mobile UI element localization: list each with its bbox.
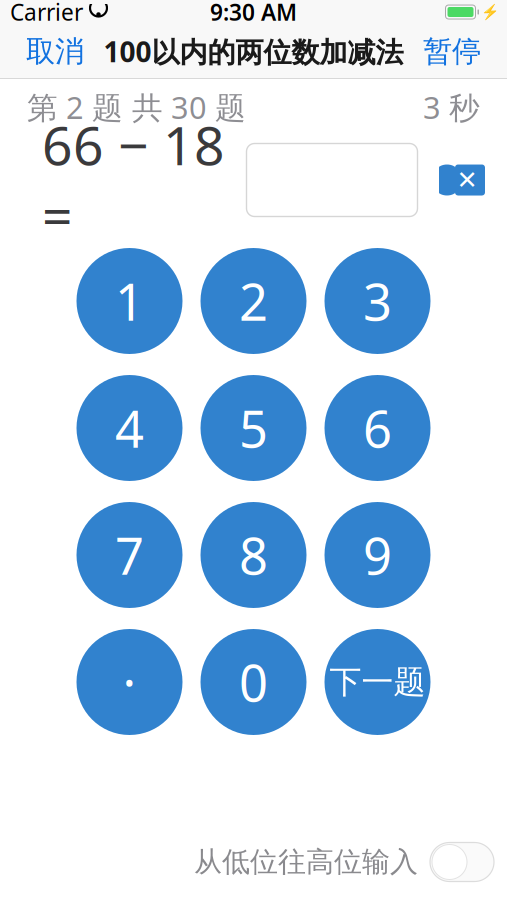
- staticText: 8: [239, 521, 268, 589]
- button[interactable]: 取消: [14, 24, 96, 78]
- staticText: Carrier: [10, 0, 83, 27]
- staticText: 从低位往高位输入: [194, 845, 418, 879]
- button[interactable]: ·: [76, 629, 182, 735]
- button[interactable]: 9: [324, 502, 430, 608]
- staticText: ⚡: [481, 4, 499, 20]
- button[interactable]: 3: [324, 248, 430, 354]
- staticText: 2: [239, 267, 268, 335]
- staticText: 暂停: [423, 33, 481, 69]
- button[interactable]: 7: [76, 502, 182, 608]
- button[interactable]: 1: [76, 248, 182, 354]
- staticText: 1: [115, 267, 144, 335]
- staticText: 4: [115, 394, 144, 462]
- staticText: 100以内的两位数加减法: [103, 33, 403, 70]
- staticText: 6: [363, 394, 392, 462]
- staticText: 7: [115, 521, 144, 589]
- staticText: 9:30 AM: [210, 0, 297, 27]
- button[interactable]: 答案输入框: [246, 143, 417, 216]
- button[interactable]: 暂停: [411, 24, 493, 78]
- button[interactable]: 2: [200, 248, 306, 354]
- button[interactable]: 5: [200, 375, 306, 481]
- button[interactable]: 下一题: [324, 629, 430, 735]
- button[interactable]: 从低位往高位输入: [194, 842, 494, 881]
- staticText: 第 2 题 共 30 题: [27, 87, 246, 127]
- button[interactable]: 4: [76, 375, 182, 481]
- staticText: ·: [122, 648, 136, 716]
- button[interactable]: 6: [324, 375, 430, 481]
- staticText: 9: [363, 521, 392, 589]
- staticText: 3: [363, 267, 392, 335]
- button[interactable]: 0: [200, 629, 306, 735]
- staticText: 0: [239, 648, 268, 716]
- button[interactable]: 8: [200, 502, 306, 608]
- staticText: 下一题: [329, 662, 425, 702]
- staticText: 66 − 18 =: [42, 109, 225, 251]
- staticText: 取消: [26, 33, 84, 69]
- button[interactable]: 删除: [439, 164, 485, 196]
- staticText: 5: [239, 394, 268, 462]
- staticText: [83, 0, 89, 27]
- staticText: 3 秒: [423, 87, 480, 127]
- staticText: ✕: [456, 166, 477, 194]
